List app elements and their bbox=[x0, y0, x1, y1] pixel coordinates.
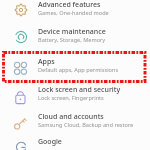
button[interactable]: Google bbox=[0, 134, 150, 150]
staticText: Device maintenance bbox=[38, 27, 106, 37]
staticText: Cloud and accounts bbox=[38, 112, 104, 122]
staticText: Apps bbox=[38, 57, 55, 67]
button[interactable]: Advanced features bbox=[0, 0, 150, 23]
staticText: Games, One-handed mode bbox=[38, 9, 109, 17]
staticText: Battery, Storage, Memory bbox=[38, 36, 106, 44]
button[interactable]: Device maintenance bbox=[0, 24, 150, 50]
staticText: Samsung Cloud, Backup and restore bbox=[38, 121, 134, 129]
button[interactable]: Cloud and accounts bbox=[0, 109, 150, 135]
button[interactable]: Apps bbox=[0, 54, 150, 80]
staticText: Lock screen and security bbox=[38, 85, 121, 95]
staticText: Default apps, App permissions bbox=[38, 66, 119, 74]
staticText: Advanced features bbox=[38, 0, 101, 10]
button[interactable]: Lock screen and security bbox=[0, 82, 150, 108]
staticText: Google bbox=[38, 137, 62, 147]
staticText: Lock screen, Fingerprints bbox=[38, 94, 104, 102]
